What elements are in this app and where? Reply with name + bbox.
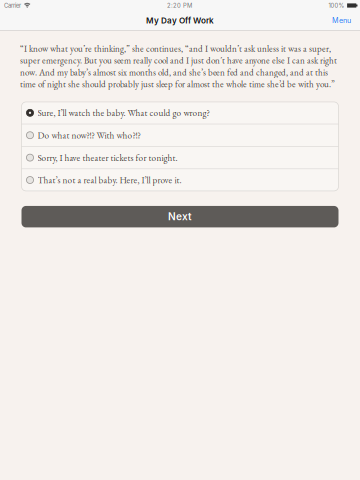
staticText: That’s not a real baby. Here, I’ll prove… bbox=[37, 174, 181, 186]
staticText: My Day Off Work bbox=[146, 16, 214, 25]
button[interactable]: Sorry, I have theater tickets for tonigh… bbox=[21, 147, 338, 168]
button[interactable]: Next bbox=[21, 206, 338, 227]
staticText: Do what now?!? With who?!? bbox=[37, 129, 140, 141]
button[interactable]: Sure, I’ll watch the baby. What could go… bbox=[21, 102, 338, 124]
staticText: Next bbox=[168, 210, 192, 223]
button[interactable]: Menu bbox=[322, 11, 360, 30]
button[interactable]: That’s not a real baby. Here, I’ll prove… bbox=[21, 169, 338, 191]
staticText: Sorry, I have theater tickets for tonigh… bbox=[37, 152, 177, 164]
staticText: 2:20 PM bbox=[167, 2, 192, 9]
staticText: Menu bbox=[332, 16, 351, 25]
button[interactable]: Do what now?!? With who?!? bbox=[21, 124, 338, 146]
staticText: Sure, I’ll watch the baby. What could go… bbox=[37, 107, 209, 119]
staticText: 100% bbox=[329, 2, 345, 9]
staticText: Carrier bbox=[4, 2, 21, 9]
staticText: “I know what you’re thinking,” she conti… bbox=[20, 43, 337, 90]
